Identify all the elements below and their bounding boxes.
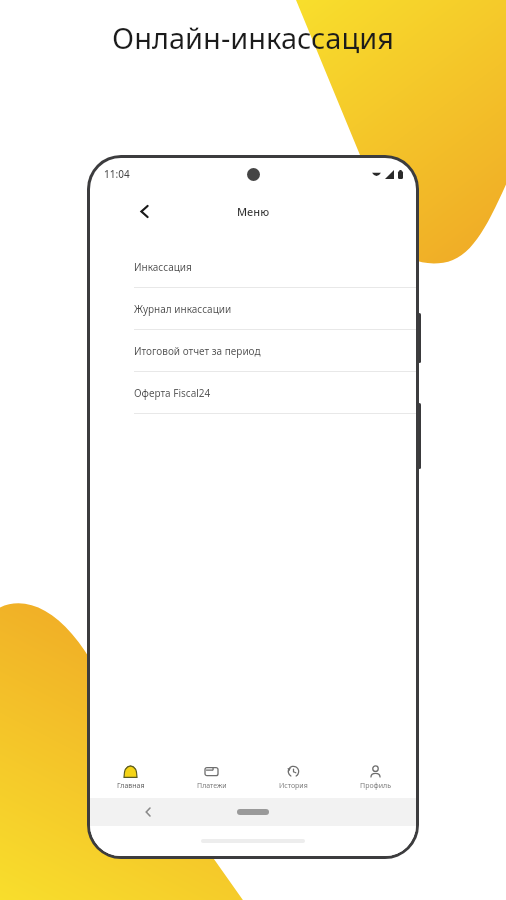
staticText: Меню (237, 204, 270, 219)
button[interactable]: История (252, 758, 334, 798)
staticText: История (279, 781, 308, 791)
staticText: Итоговой отчет за период (134, 344, 261, 358)
staticText: Оферта Fiscal24 (134, 386, 211, 400)
button[interactable]: Итоговой отчет за период (90, 330, 416, 372)
button[interactable]: Главная (90, 758, 171, 798)
staticText: Инкассация (134, 260, 192, 274)
staticText: Журнал инкассации (134, 302, 232, 316)
staticText: Профиль (360, 781, 391, 791)
button[interactable]: Журнал инкассации (90, 288, 416, 330)
staticText: 11:04 (104, 167, 130, 181)
button[interactable]: Домой (237, 809, 269, 815)
button[interactable]: Назад (130, 197, 158, 225)
button[interactable]: Системная кнопка назад (138, 802, 158, 822)
staticText: Онлайн-инкассация (112, 18, 394, 57)
button[interactable]: Оферта Fiscal24 (90, 372, 416, 414)
staticText: Главная (117, 781, 145, 791)
button[interactable]: Инкассация (90, 246, 416, 288)
button[interactable]: Платежи (171, 758, 252, 798)
staticText: Платежи (197, 781, 227, 791)
button[interactable]: Профиль (334, 758, 416, 798)
